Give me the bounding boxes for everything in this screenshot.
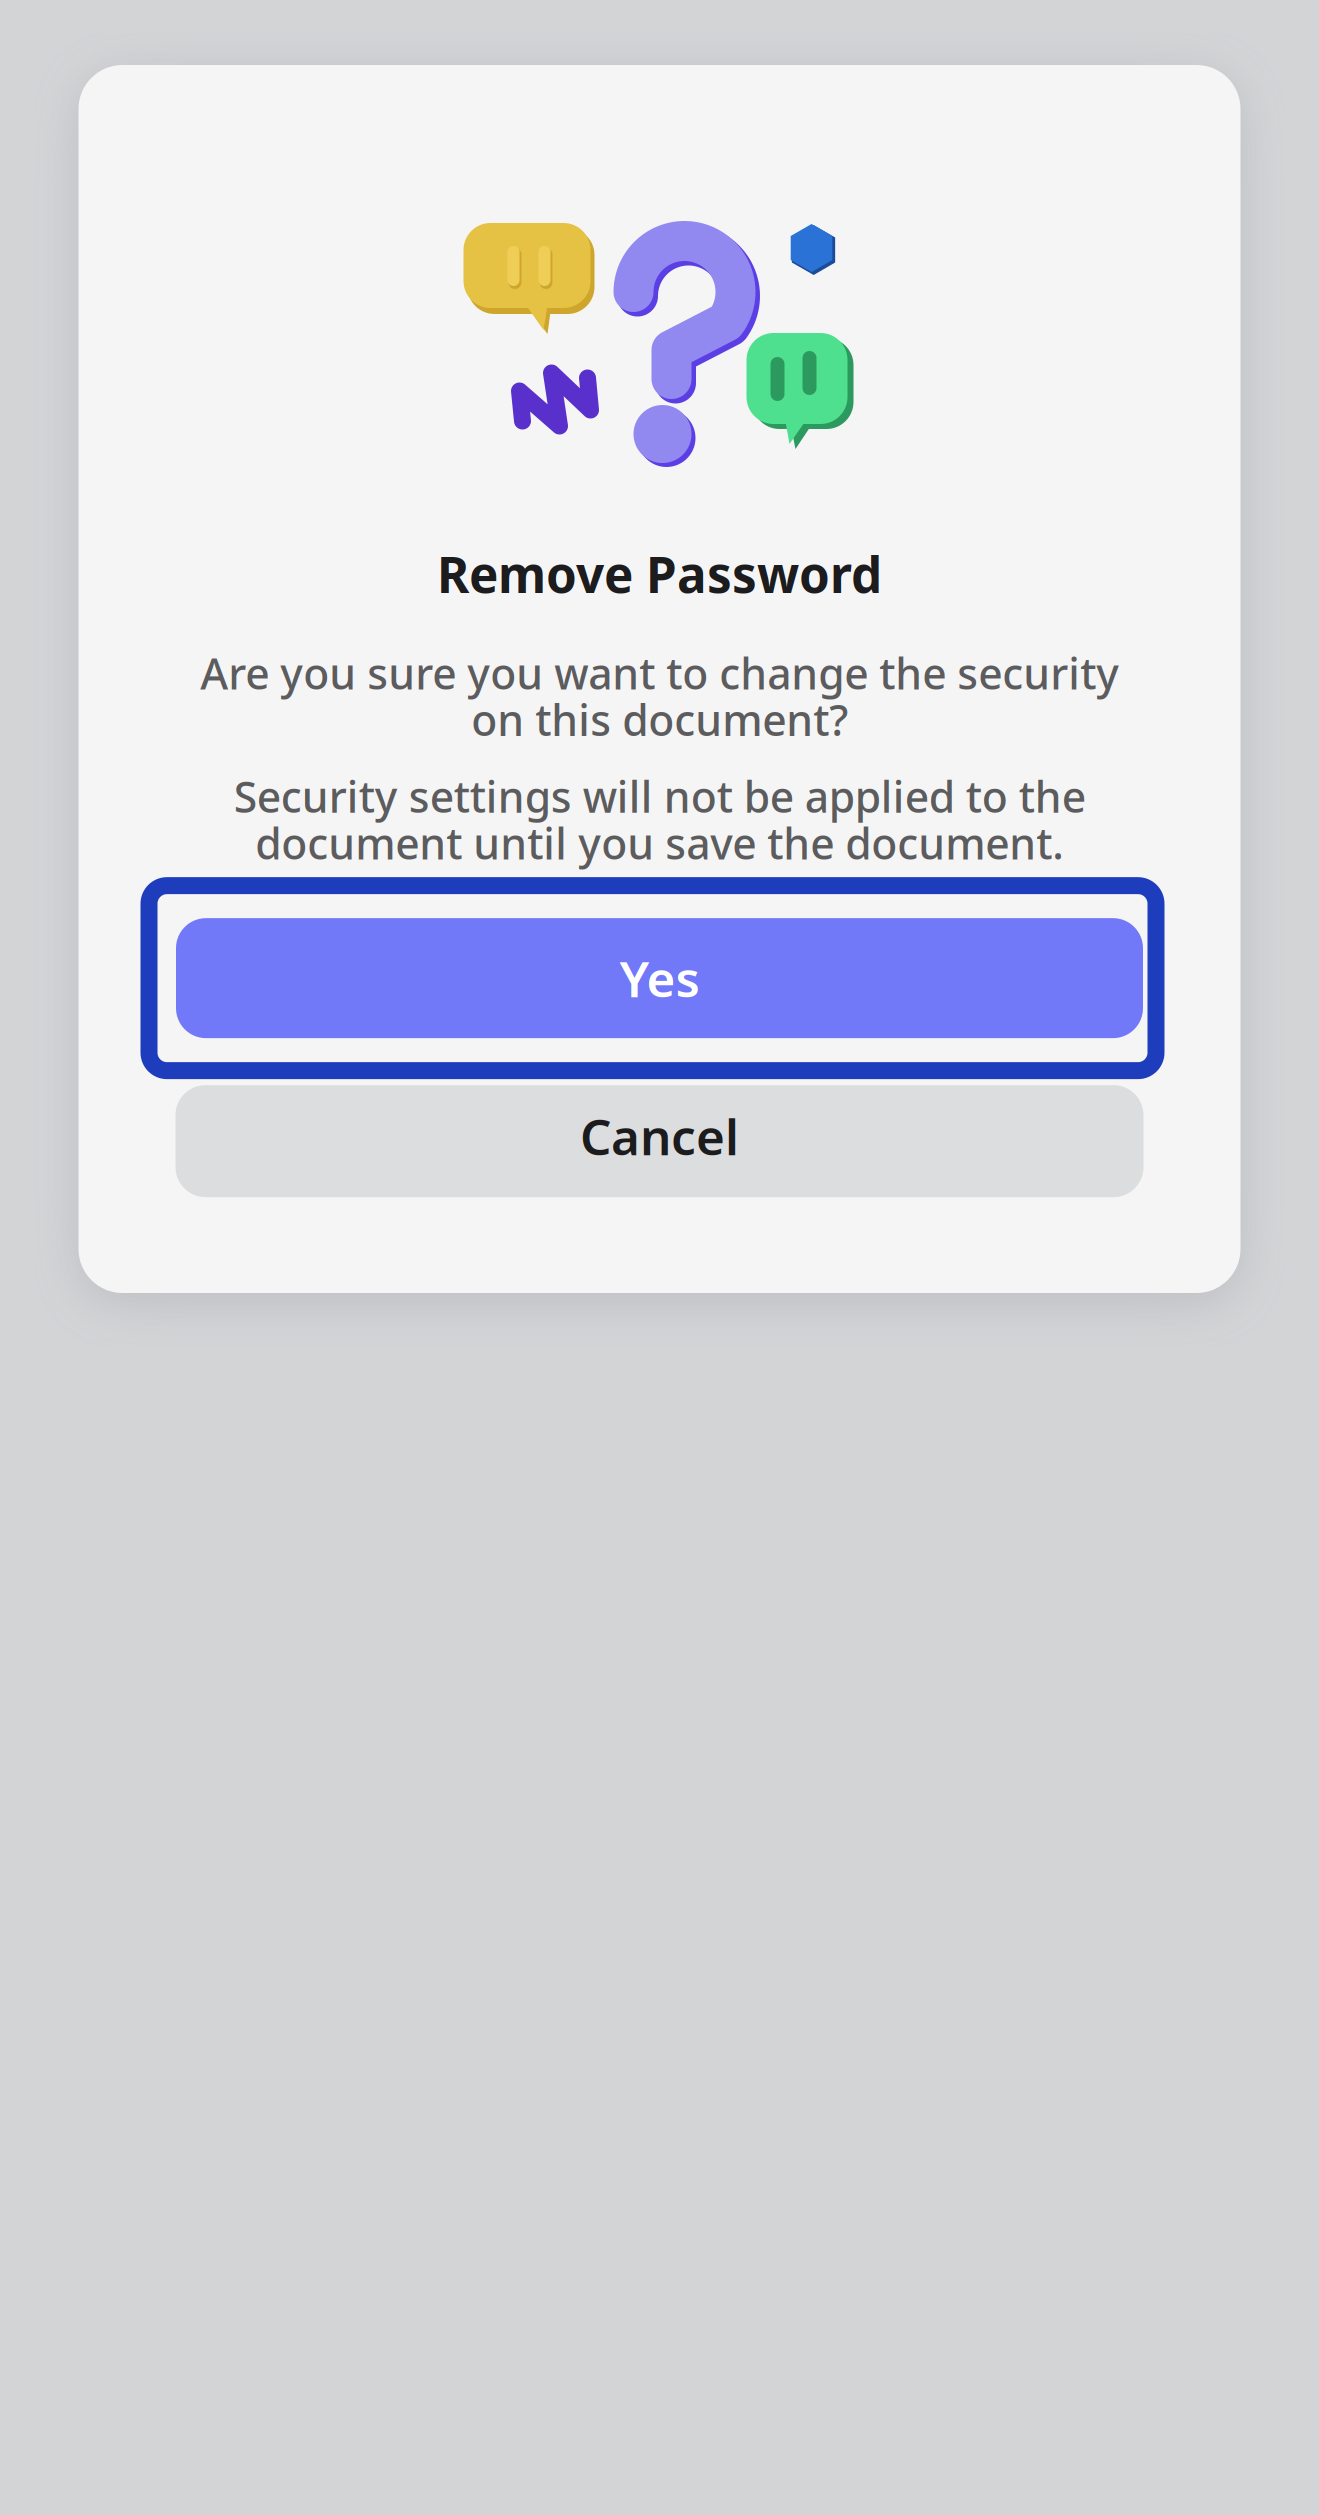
staticText: Security settings will not be applied to… bbox=[233, 768, 1085, 871]
staticText: Remove Password bbox=[437, 541, 882, 606]
staticText: Are you sure you want to change the secu… bbox=[200, 644, 1119, 748]
button[interactable]: Yes bbox=[147, 877, 1171, 1079]
staticText: Cancel bbox=[580, 1103, 739, 1169]
button[interactable]: Cancel bbox=[175, 1085, 1143, 1197]
staticText: Yes bbox=[619, 945, 699, 1011]
